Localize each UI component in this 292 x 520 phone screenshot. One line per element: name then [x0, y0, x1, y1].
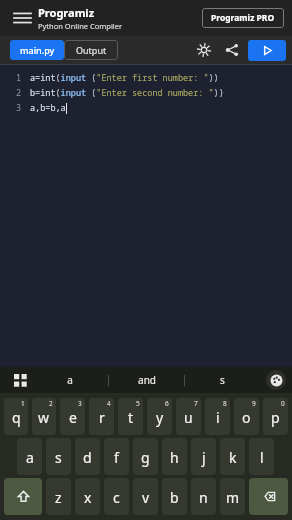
- button[interactable]: y: [147, 398, 172, 435]
- staticText: p: [271, 408, 280, 427]
- staticText: 0: [281, 399, 285, 408]
- button[interactable]: w: [32, 398, 56, 435]
- button[interactable]: r: [89, 398, 114, 435]
- button[interactable]: Programiz PRO: [202, 8, 284, 28]
- staticText: c: [113, 488, 120, 507]
- button[interactable]: Themes: [266, 370, 286, 390]
- staticText: 2: [16, 87, 22, 99]
- staticText: d: [83, 448, 92, 467]
- button[interactable]: k: [220, 438, 245, 475]
- button[interactable]: Theme: [192, 38, 216, 62]
- staticText: and: [138, 373, 156, 387]
- staticText: z: [55, 488, 62, 507]
- button[interactable]: z: [46, 478, 71, 515]
- button[interactable]: e: [60, 398, 85, 435]
- button[interactable]: Output: [64, 40, 118, 60]
- button[interactable]: Share: [220, 38, 244, 62]
- staticText: 6: [165, 399, 169, 408]
- staticText: a=int(input ("Enter first number: ")): [30, 72, 219, 84]
- button[interactable]: o: [234, 398, 259, 435]
- button[interactable]: m: [220, 478, 245, 515]
- staticText: v: [142, 488, 150, 507]
- staticText: m: [226, 488, 240, 507]
- staticText: 8: [223, 399, 227, 408]
- button[interactable]: h: [162, 438, 187, 475]
- staticText: Output: [76, 44, 107, 56]
- button[interactable]: t: [118, 398, 143, 435]
- staticText: 4: [107, 399, 111, 408]
- button[interactable]: j: [191, 438, 216, 475]
- staticText: 1: [21, 399, 25, 408]
- staticText: a,b=b,a: [30, 102, 66, 114]
- button[interactable]: a: [32, 367, 108, 393]
- button[interactable]: i: [205, 398, 230, 435]
- staticText: i: [216, 408, 220, 427]
- staticText: 1: [16, 72, 22, 84]
- staticText: 5: [136, 399, 140, 408]
- staticText: main.py: [20, 44, 55, 56]
- staticText: o: [242, 408, 251, 427]
- staticText: k: [229, 448, 237, 467]
- staticText: Programiz PRO: [211, 12, 275, 24]
- staticText: n: [199, 488, 208, 507]
- staticText: a: [67, 373, 73, 387]
- button[interactable]: Run: [248, 40, 286, 61]
- staticText: b: [170, 488, 179, 507]
- staticText: 3: [16, 102, 22, 114]
- staticText: l: [260, 448, 264, 467]
- button[interactable]: s: [185, 367, 260, 393]
- staticText: Python Online Compiler: [38, 21, 123, 31]
- staticText: s: [55, 448, 62, 467]
- button[interactable]: main.py: [10, 40, 64, 60]
- button[interactable]: Menu: [8, 4, 36, 32]
- staticText: 3: [78, 399, 82, 408]
- button[interactable]: q: [4, 398, 28, 435]
- staticText: j: [202, 448, 206, 467]
- button[interactable]: b: [162, 478, 187, 515]
- staticText: q: [12, 408, 21, 427]
- staticText: b=int(input ("Enter second number: ")): [30, 87, 224, 99]
- staticText: g: [141, 448, 150, 467]
- button[interactable]: p: [263, 398, 288, 435]
- staticText: Programiz: [38, 5, 95, 20]
- button[interactable]: l: [249, 438, 274, 475]
- button[interactable]: g: [133, 438, 158, 475]
- staticText: e: [69, 408, 77, 427]
- staticText: 2: [49, 399, 53, 408]
- button[interactable]: and: [109, 367, 184, 393]
- staticText: s: [220, 373, 225, 387]
- button[interactable]: Backspace: [249, 478, 288, 515]
- staticText: 7: [194, 399, 198, 408]
- button[interactable]: Shift: [4, 478, 42, 515]
- button[interactable]: n: [191, 478, 216, 515]
- button[interactable]: x: [75, 478, 100, 515]
- staticText: r: [99, 408, 105, 427]
- staticText: 9: [252, 399, 256, 408]
- staticText: h: [170, 448, 179, 467]
- button[interactable]: c: [104, 478, 129, 515]
- staticText: y: [156, 408, 164, 427]
- button[interactable]: v: [133, 478, 158, 515]
- staticText: w: [38, 408, 50, 427]
- staticText: t: [128, 408, 134, 427]
- button[interactable]: s: [46, 438, 71, 475]
- staticText: u: [184, 408, 193, 427]
- button[interactable]: f: [104, 438, 129, 475]
- button[interactable]: u: [176, 398, 201, 435]
- staticText: x: [84, 488, 92, 507]
- button[interactable]: d: [75, 438, 100, 475]
- staticText: f: [114, 448, 119, 467]
- button[interactable]: a: [17, 438, 42, 475]
- button[interactable]: Clipboard: [9, 369, 31, 391]
- staticText: a: [26, 448, 34, 467]
